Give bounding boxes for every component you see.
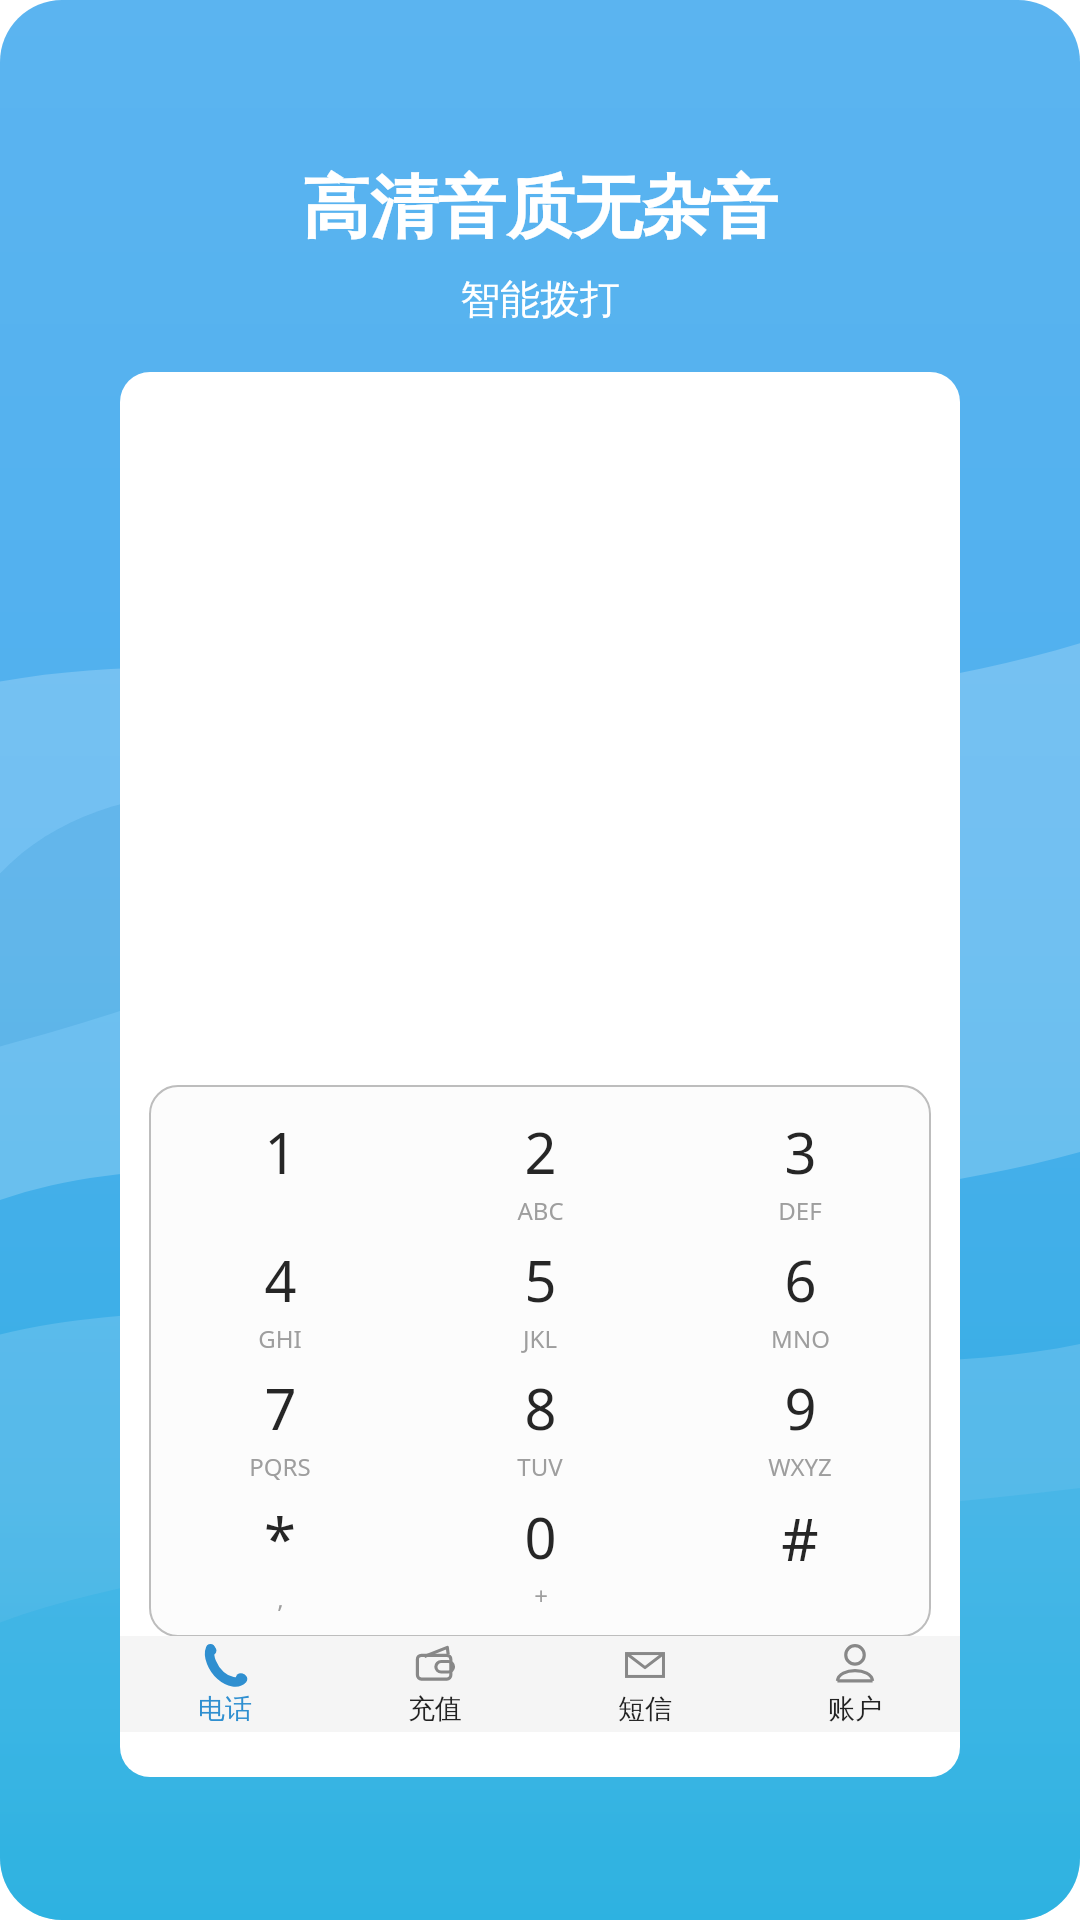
button[interactable]: 账户 — [750, 1636, 960, 1732]
button[interactable]: 6 — [670, 1242, 930, 1370]
staticText: ABC — [517, 1194, 564, 1227]
staticText: 7 — [264, 1370, 297, 1446]
staticText: * — [264, 1499, 296, 1578]
staticText: , — [277, 1582, 284, 1615]
staticText: 6 — [784, 1242, 817, 1318]
button[interactable]: 电话 — [120, 1636, 330, 1732]
staticText: WXYZ — [768, 1450, 832, 1483]
button[interactable]: # — [670, 1499, 930, 1628]
button[interactable]: 4 — [150, 1242, 410, 1370]
staticText: 0 — [524, 1499, 557, 1575]
button[interactable]: 1 — [150, 1114, 410, 1242]
staticText: # — [781, 1499, 819, 1578]
button[interactable]: 3 — [670, 1114, 930, 1242]
staticText: JKL — [523, 1322, 557, 1355]
button[interactable]: 充值 — [330, 1636, 540, 1732]
staticText: 8 — [524, 1370, 557, 1446]
staticText: 4 — [264, 1242, 297, 1318]
staticText: DEF — [778, 1194, 822, 1227]
staticText: 5 — [524, 1242, 557, 1318]
staticText: 9 — [784, 1370, 817, 1446]
staticText: 2 — [524, 1114, 557, 1190]
button[interactable]: 0 — [410, 1499, 670, 1628]
button[interactable]: * — [150, 1499, 410, 1628]
staticText: 1 — [264, 1114, 297, 1190]
button[interactable]: 8 — [410, 1370, 670, 1499]
staticText: PQRS — [249, 1450, 311, 1483]
staticText: 智能拨打 — [460, 274, 620, 324]
staticText: MNO — [771, 1322, 830, 1355]
button[interactable]: 9 — [670, 1370, 930, 1499]
button[interactable]: 短信 — [540, 1636, 750, 1732]
staticText: GHI — [258, 1322, 302, 1355]
button[interactable]: 7 — [150, 1370, 410, 1499]
button[interactable]: 2 — [410, 1114, 670, 1242]
staticText: 充值 — [408, 1692, 462, 1726]
staticText: 3 — [784, 1114, 817, 1190]
staticText: 账户 — [828, 1692, 882, 1726]
staticText: TUV — [517, 1450, 563, 1483]
staticText: + — [534, 1579, 548, 1612]
staticText: 短信 — [618, 1692, 672, 1726]
staticText: 高清音质无杂音 — [302, 166, 778, 252]
staticText: 电话 — [198, 1692, 252, 1726]
button[interactable]: 5 — [410, 1242, 670, 1370]
